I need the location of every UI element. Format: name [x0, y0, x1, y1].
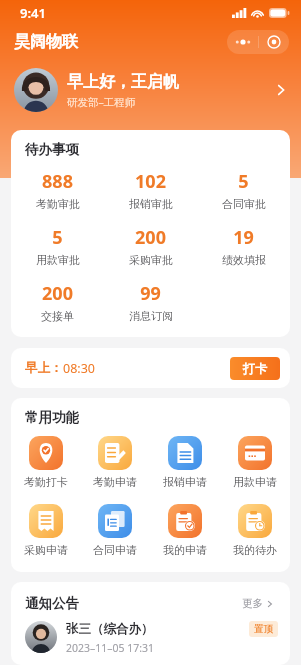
staticText: 考勤打卡 — [24, 475, 68, 489]
staticText: 2023–11–05 17:31 — [66, 641, 155, 655]
button[interactable]: Scan — [259, 30, 289, 54]
staticText: 考勤申请 — [93, 475, 137, 489]
staticText: 张三（综合办） — [66, 621, 154, 637]
button[interactable]: 5 — [11, 218, 104, 274]
button[interactable]: 更多 — [238, 593, 278, 614]
staticText: 888 — [42, 169, 73, 194]
button[interactable]: 张三（综合办） — [11, 614, 290, 655]
staticText: 更多 — [242, 597, 263, 610]
button[interactable]: 用款申请 — [220, 433, 290, 492]
staticText: 消息订阅 — [129, 309, 173, 323]
button[interactable]: 102 — [104, 162, 197, 218]
button[interactable]: 采购申请 — [11, 501, 80, 560]
staticText: 打卡 — [243, 361, 267, 376]
staticText: 采购审批 — [129, 253, 173, 267]
button[interactable]: 19 — [197, 218, 290, 274]
staticText: 置顶 — [254, 623, 273, 635]
staticText: 99 — [140, 281, 161, 306]
staticText: 常用功能 — [25, 409, 79, 426]
button[interactable]: 打卡 — [230, 357, 280, 380]
staticText: 采购申请 — [24, 543, 68, 557]
button[interactable]: 888 — [11, 162, 104, 218]
staticText: 绩效填报 — [222, 253, 266, 267]
staticText: 9:41 — [20, 4, 46, 22]
staticText: 早上： — [25, 360, 63, 376]
staticText: 5 — [238, 169, 249, 194]
staticText: 交接单 — [41, 309, 74, 323]
button[interactable]: 考勤申请 — [80, 433, 150, 492]
staticText: 合同审批 — [222, 197, 266, 211]
button[interactable]: 考勤打卡 — [11, 433, 80, 492]
staticText: 报销审批 — [129, 197, 173, 211]
button[interactable]: 我的待办 — [220, 501, 290, 560]
button[interactable]: 200 — [11, 274, 104, 330]
staticText: 用款审批 — [36, 253, 80, 267]
staticText: 用款申请 — [233, 475, 277, 489]
staticText: 报销申请 — [163, 475, 207, 489]
staticText: 昊阔物联 — [14, 32, 78, 52]
staticText: 200 — [135, 225, 166, 250]
button[interactable]: More options — [227, 30, 258, 54]
staticText: 通知公告 — [25, 595, 79, 612]
staticText: 200 — [42, 281, 73, 306]
staticText: 研发部–工程师 — [67, 95, 136, 109]
staticText: 102 — [135, 169, 166, 194]
staticText: 19 — [233, 225, 254, 250]
button[interactable]: 报销申请 — [150, 433, 220, 492]
button[interactable]: 200 — [104, 218, 197, 274]
staticText: 合同申请 — [93, 543, 137, 557]
button[interactable]: 5 — [197, 162, 290, 218]
staticText: 08:30 — [63, 360, 95, 377]
button[interactable]: 合同申请 — [80, 501, 150, 560]
staticText: 早上好，王启帆 — [67, 72, 179, 92]
button[interactable]: 早上好，王启帆 — [0, 64, 301, 116]
button[interactable]: 我的申请 — [150, 501, 220, 560]
staticText: 我的待办 — [233, 543, 277, 557]
staticText: 5 — [52, 225, 63, 250]
button[interactable]: 99 — [104, 274, 197, 330]
staticText: 考勤审批 — [36, 197, 80, 211]
staticText: 待办事项 — [25, 141, 79, 158]
staticText: 我的申请 — [163, 543, 207, 557]
